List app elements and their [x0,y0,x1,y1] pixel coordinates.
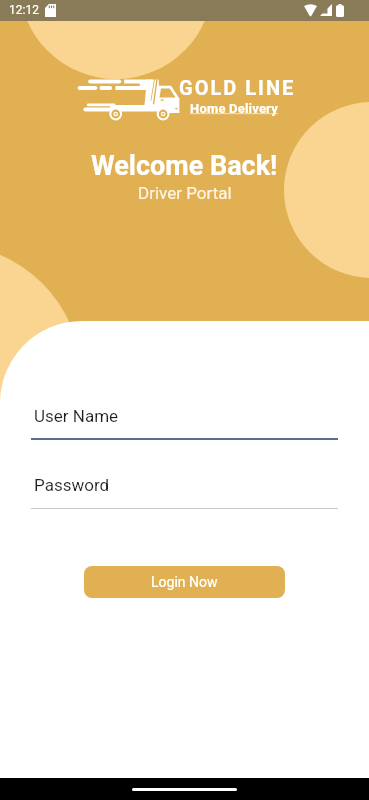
button[interactable]: Login Now [84,566,285,598]
staticText: Driver Portal [138,183,232,203]
staticText: 12:12 [9,3,39,17]
staticText: GOLD LINE [179,76,296,99]
button[interactable]: User Name [31,401,338,440]
staticText: Welcome Back! [91,150,278,182]
staticText: Home Delivery [190,101,278,116]
staticText: Password [34,475,110,495]
other: Battery [336,4,344,17]
button[interactable]: Password [31,470,338,509]
staticText: Login Now [151,574,218,590]
staticText: User Name [34,406,119,426]
other: Gold Line delivery truck logo [73,75,185,122]
other: Mobile signal [320,4,332,16]
other: Wi-Fi [304,4,317,16]
other: SD card [45,4,56,17]
